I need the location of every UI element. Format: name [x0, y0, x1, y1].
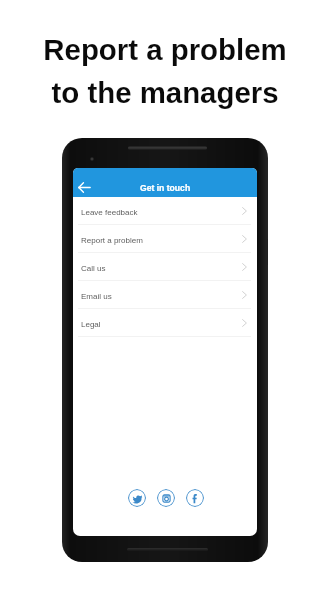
- button[interactable]: Report a problem: [73, 225, 257, 253]
- button[interactable]: Facebook: [186, 489, 204, 507]
- staticText: Legal: [81, 320, 101, 329]
- button[interactable]: Email us: [73, 281, 257, 309]
- button[interactable]: Legal: [73, 309, 257, 337]
- button[interactable]: Instagram: [157, 489, 175, 507]
- button[interactable]: Twitter: [128, 489, 146, 507]
- staticText: Report a problem: [81, 236, 143, 245]
- staticText: Report a problem: [43, 33, 287, 66]
- staticText: to the managers: [51, 76, 279, 109]
- button[interactable]: Leave feedback: [73, 197, 257, 225]
- button[interactable]: Call us: [73, 253, 257, 281]
- button[interactable]: Back: [73, 173, 95, 202]
- staticText: Call us: [81, 264, 106, 273]
- staticText: Get in touch: [140, 183, 191, 193]
- staticText: Email us: [81, 292, 112, 301]
- staticText: Leave feedback: [81, 208, 138, 217]
